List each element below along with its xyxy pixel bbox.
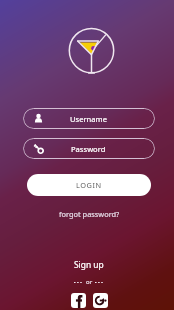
button[interactable]: forgot password? [59, 209, 120, 219]
staticText: Password [71, 144, 106, 154]
staticText: LOGIN [76, 180, 102, 190]
staticText: Sign up [74, 259, 104, 270]
staticText: forgot password? [59, 209, 120, 219]
button[interactable]: Username [23, 108, 155, 129]
staticText: or [86, 278, 93, 286]
button[interactable]: Password [23, 138, 155, 159]
button[interactable]: Facebook [71, 293, 86, 308]
button[interactable]: Google Plus [93, 293, 108, 308]
button[interactable]: Sign up [74, 259, 104, 270]
staticText: Username [70, 114, 107, 124]
button[interactable]: LOGIN [27, 174, 151, 196]
